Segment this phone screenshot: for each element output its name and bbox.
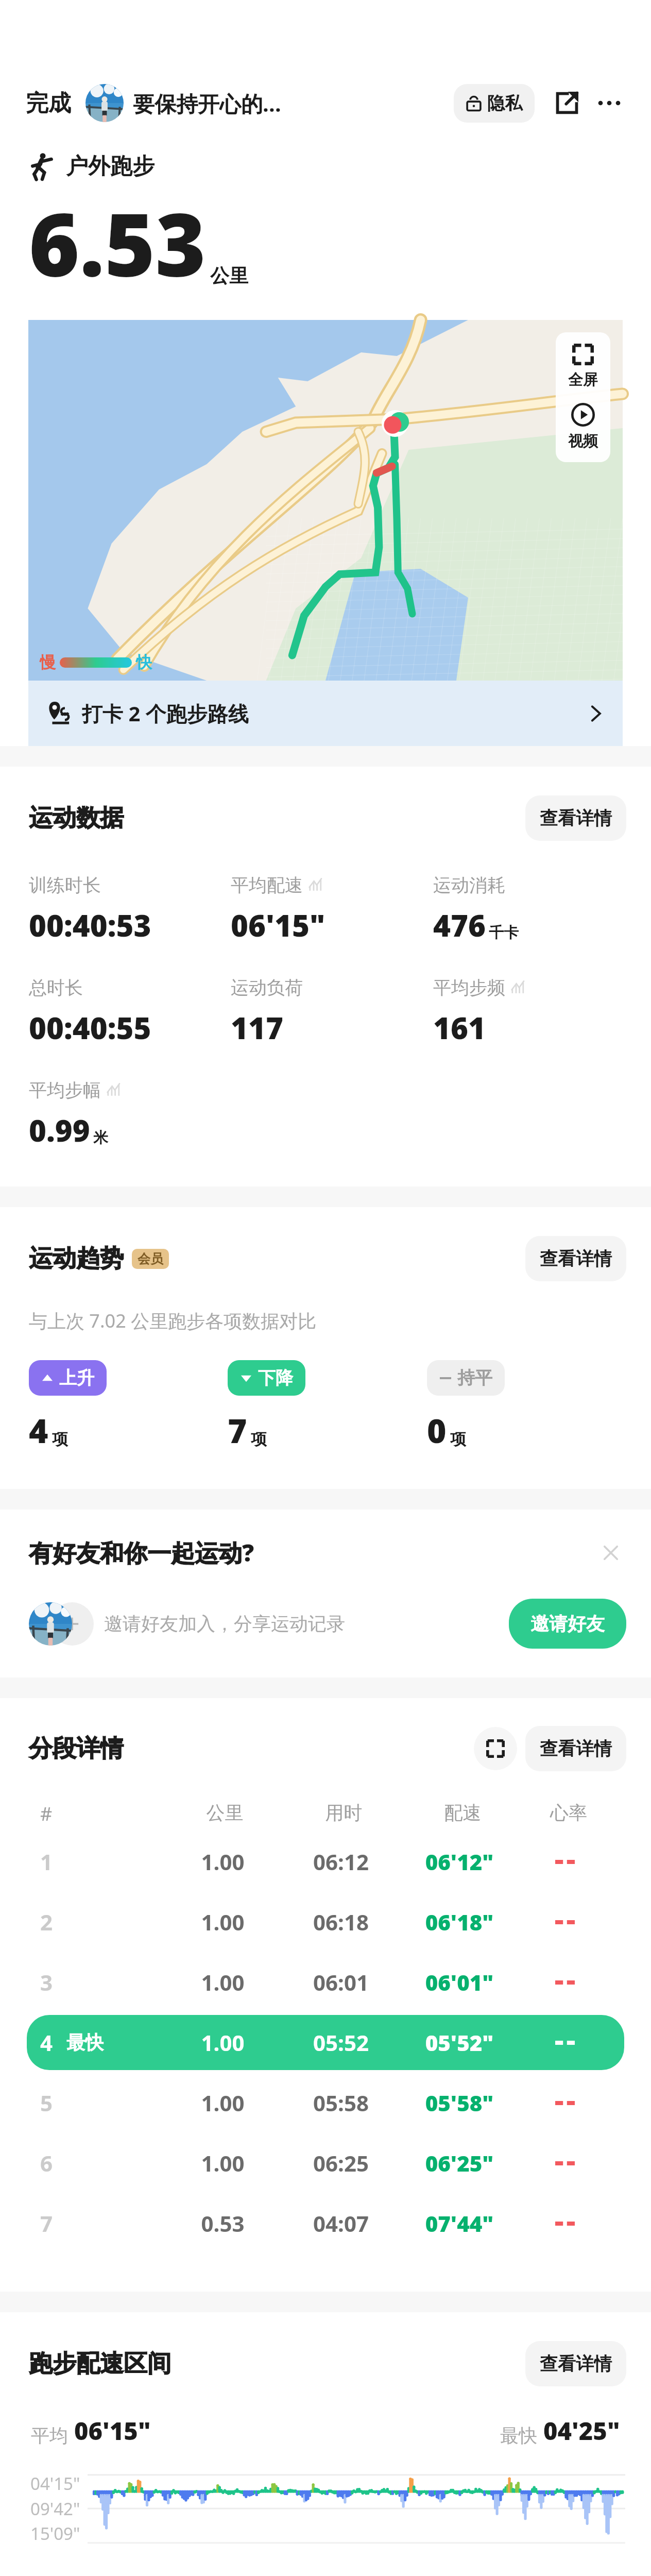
- staticText: 00:40:53: [29, 905, 151, 945]
- button[interactable]: Fullscreen: [568, 344, 598, 389]
- button[interactable]: Share: [550, 86, 584, 120]
- staticText: 与上次 7.02 公里跑步各项数据对比: [29, 1308, 317, 1333]
- staticText: 会员: [138, 1251, 163, 1267]
- staticText: 训练时长: [29, 874, 101, 896]
- staticText: 06'15": [74, 2414, 151, 2447]
- staticText: 慢: [40, 652, 56, 672]
- staticText: 运动趋势: [29, 1244, 124, 1274]
- staticText: 查看详情: [540, 2352, 612, 2375]
- button[interactable]: 6: [27, 2136, 624, 2191]
- button[interactable]: 4: [27, 2015, 624, 2070]
- button[interactable]: 查看详情: [525, 795, 626, 841]
- staticText: 米: [93, 1128, 108, 1147]
- staticText: 持平: [457, 1367, 492, 1389]
- staticText: 07'44": [400, 2209, 519, 2238]
- staticText: 3: [40, 1968, 53, 1997]
- staticText: 用时: [284, 1801, 403, 1824]
- staticText: 平均配速: [231, 874, 303, 896]
- staticText: 4: [29, 1408, 48, 1453]
- button[interactable]: 邀请好友: [509, 1599, 626, 1649]
- button[interactable]: 查看详情: [525, 1726, 626, 1771]
- staticText: 项: [450, 1429, 466, 1449]
- staticText: 快: [136, 652, 152, 672]
- staticText: 0: [427, 1408, 447, 1453]
- button[interactable]: 运动负荷: [231, 976, 433, 1048]
- button[interactable]: 总时长: [29, 976, 231, 1048]
- staticText: 1.00: [164, 1968, 282, 1997]
- staticText: 查看详情: [540, 1737, 612, 1760]
- button[interactable]: 平均配速: [231, 874, 433, 945]
- button[interactable]: Expand: [474, 1727, 517, 1770]
- staticText: 邀请好友: [530, 1612, 605, 1635]
- staticText: 6: [40, 2148, 53, 2178]
- staticText: 运动数据: [29, 803, 124, 833]
- staticText: 隐私: [487, 92, 522, 114]
- staticText: 476: [433, 905, 486, 945]
- staticText: 下降: [258, 1367, 293, 1389]
- button[interactable]: 7: [27, 2196, 624, 2251]
- staticText: 平均步幅: [29, 1079, 101, 1101]
- staticText: 1: [40, 1847, 53, 1876]
- staticText: 查看详情: [540, 1247, 612, 1270]
- staticText: 06:18: [282, 1907, 400, 1937]
- staticText: 全屏: [568, 370, 598, 389]
- staticText: 0.53: [164, 2209, 282, 2238]
- button[interactable]: 3: [27, 1955, 624, 2010]
- button[interactable]: 查看详情: [525, 1236, 626, 1281]
- staticText: 04'25": [543, 2414, 620, 2447]
- button[interactable]: 训练时长: [29, 874, 231, 945]
- staticText: 00:40:55: [29, 1007, 151, 1048]
- button[interactable]: Close: [595, 1537, 626, 1568]
- staticText: 06'15": [231, 905, 325, 945]
- staticText: 项: [52, 1429, 68, 1449]
- button[interactable]: 平均步频: [433, 976, 636, 1048]
- staticText: #: [40, 1801, 165, 1826]
- button[interactable]: 2: [27, 1894, 624, 1950]
- staticText: 有好友和你一起运动?: [29, 1536, 254, 1569]
- button[interactable]: 上升: [29, 1360, 228, 1453]
- staticText: 项: [251, 1429, 267, 1449]
- staticText: 2: [40, 1907, 53, 1937]
- staticText: 5: [40, 2088, 53, 2117]
- button[interactable]: 查看详情: [525, 2341, 626, 2386]
- button[interactable]: 要保持开心的…: [133, 89, 281, 118]
- staticText: 跑步配速区间: [29, 2349, 171, 2379]
- staticText: 上升: [59, 1367, 94, 1389]
- staticText: 公里: [210, 264, 248, 288]
- staticText: 户外跑步: [66, 152, 155, 180]
- staticText: 6.53: [29, 183, 206, 301]
- staticText: 04:07: [282, 2209, 400, 2238]
- button[interactable]: Fullscreen: [28, 320, 623, 681]
- staticText: 视频: [568, 432, 598, 451]
- staticText: 7: [228, 1408, 247, 1453]
- button[interactable]: 运动消耗: [433, 874, 636, 945]
- staticText: 心率: [522, 1801, 615, 1824]
- button[interactable]: 1: [27, 1834, 624, 1889]
- staticText: 1.00: [164, 2088, 282, 2117]
- staticText: 1.00: [164, 2028, 282, 2057]
- staticText: 总时长: [29, 976, 83, 999]
- button[interactable]: 打卡 2 个跑步路线: [28, 681, 623, 746]
- staticText: 平均步频: [433, 976, 505, 999]
- staticText: 配速: [403, 1801, 522, 1824]
- staticText: 0.99: [29, 1110, 90, 1150]
- staticText: 分段详情: [29, 1734, 124, 1764]
- button[interactable]: 完成: [26, 89, 71, 117]
- button[interactable]: 5: [27, 2075, 624, 2130]
- staticText: 06:12: [282, 1847, 400, 1876]
- staticText: 邀请好友加入，分享运动记录: [104, 1612, 345, 1635]
- staticText: 运动消耗: [433, 874, 505, 896]
- button[interactable]: 隐私: [454, 84, 535, 123]
- button[interactable]: 下降: [228, 1360, 427, 1453]
- button[interactable]: 平均步幅: [29, 1079, 231, 1150]
- staticText: 最快: [500, 2424, 537, 2447]
- staticText: 7: [40, 2209, 53, 2238]
- staticText: 1.00: [164, 1907, 282, 1937]
- button[interactable]: 持平: [427, 1360, 626, 1453]
- staticText: 06'18": [400, 1907, 519, 1937]
- button[interactable]: More options: [593, 87, 625, 119]
- button[interactable]: Video: [568, 403, 598, 451]
- staticText: 最快: [66, 2031, 104, 2054]
- staticText: 1.00: [164, 1847, 282, 1876]
- staticText: 06:25: [282, 2148, 400, 2178]
